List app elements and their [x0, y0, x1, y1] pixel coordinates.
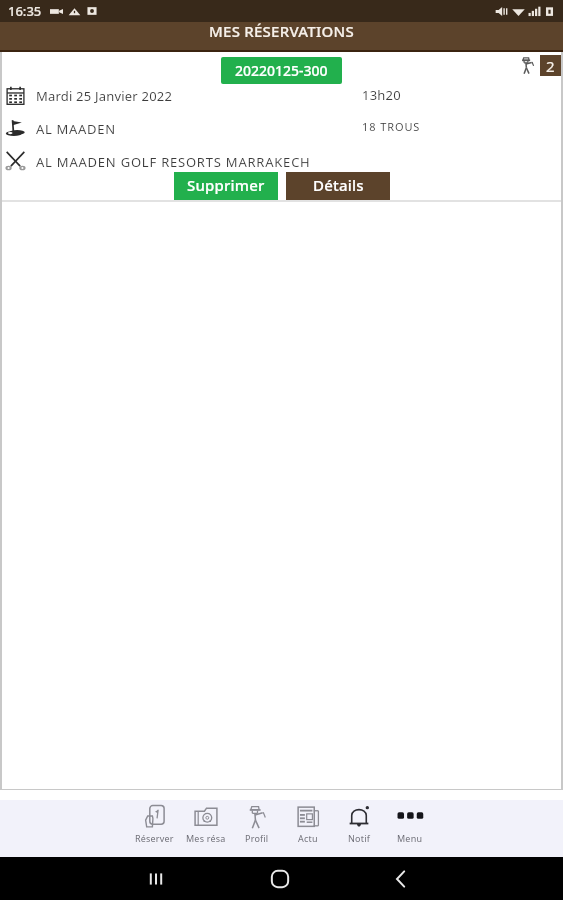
button[interactable]: Menu: [384, 800, 435, 857]
staticText: MES RÉSERVATIONS: [209, 21, 354, 41]
button[interactable]: Réserver: [129, 800, 180, 857]
button[interactable]: 20220125-300: [221, 57, 342, 84]
button[interactable]: Détails: [286, 172, 390, 200]
staticText: AL MAADEN: [36, 120, 116, 138]
staticText: Mes résa: [186, 832, 226, 844]
staticText: Mardi 25 Janvier 2022: [36, 87, 173, 105]
button[interactable]: Mes résa: [180, 800, 231, 857]
staticText: 2: [546, 56, 555, 76]
button[interactable]: Home: [260, 859, 300, 899]
staticText: 16:35: [8, 2, 42, 20]
button[interactable]: Joueurs: [540, 55, 561, 76]
button[interactable]: Profil: [231, 800, 282, 857]
staticText: Notif: [348, 832, 370, 844]
button[interactable]: Actu: [282, 800, 333, 857]
staticText: Supprimer: [187, 175, 265, 195]
button[interactable]: Recents: [136, 859, 176, 899]
button[interactable]: Supprimer: [174, 172, 278, 200]
staticText: Menu: [397, 832, 423, 844]
staticText: 13h20: [362, 86, 401, 104]
staticText: 20220125-300: [235, 61, 328, 80]
staticText: AL MAADEN GOLF RESORTS MARRAKECH: [36, 153, 311, 171]
staticText: Réserver: [135, 832, 174, 844]
button[interactable]: Back: [381, 859, 421, 899]
staticText: Profil: [245, 832, 269, 844]
button[interactable]: Notif: [333, 800, 384, 857]
staticText: Actu: [298, 832, 318, 844]
staticText: 18 TROUS: [362, 119, 421, 134]
staticText: Détails: [313, 175, 364, 195]
